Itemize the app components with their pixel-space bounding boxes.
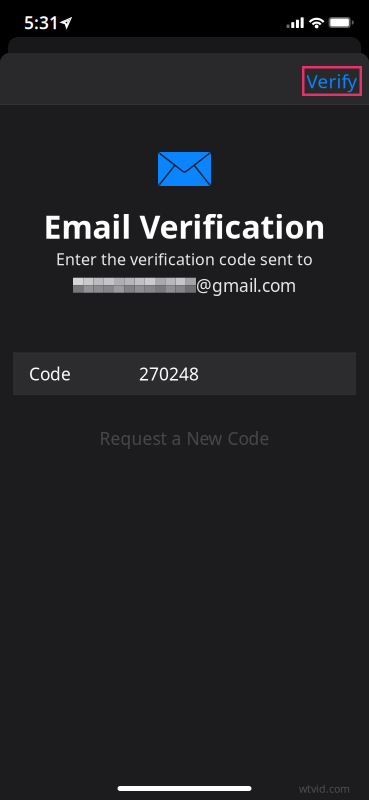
staticText: Code [29, 362, 71, 385]
staticText: Verify [306, 69, 357, 93]
staticText: 5:31 [24, 11, 59, 34]
staticText: Email Verification [43, 205, 325, 247]
button[interactable]: Request a New Code [75, 416, 293, 461]
button[interactable]: Verify [302, 66, 362, 96]
staticText: 270248 [139, 362, 199, 385]
staticText: wtvid.com [299, 781, 350, 796]
staticText: Enter the verification code sent to [56, 248, 313, 270]
staticText: @gmail.com [196, 274, 296, 297]
staticText: Request a New Code [99, 427, 269, 450]
